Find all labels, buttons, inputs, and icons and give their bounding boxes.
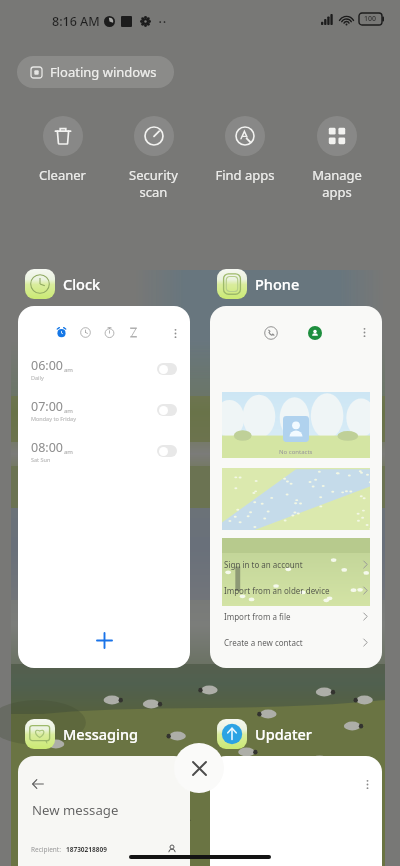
staticText: am — [64, 366, 73, 374]
staticText: Recipient: — [31, 845, 61, 854]
staticText: Import from a file — [224, 611, 291, 622]
button[interactable]: Create a new contact — [210, 629, 382, 655]
staticText: Daily — [31, 374, 44, 381]
button[interactable]: Toggle alarm — [157, 445, 177, 457]
staticText: No contacts — [279, 448, 313, 456]
staticText: 100 — [364, 14, 377, 24]
staticText: 8:16 AM — [52, 13, 100, 30]
staticText: 07:00 — [31, 398, 63, 415]
staticText: Security scan — [129, 166, 178, 201]
button[interactable]: No contacts — [210, 306, 382, 668]
staticText: Create a new contact — [224, 637, 303, 648]
button[interactable]: Import from an older device — [210, 577, 382, 603]
button[interactable]: Sign in to an account — [210, 551, 382, 577]
staticText: Messaging — [63, 724, 139, 744]
staticText: 18730218809 — [66, 845, 107, 854]
staticText: 06:00 — [31, 357, 63, 374]
staticText: am — [64, 407, 73, 415]
button[interactable]: Import from a file — [210, 603, 382, 629]
button[interactable] — [210, 756, 382, 866]
button[interactable]: Find apps — [199, 116, 291, 184]
button[interactable]: 06:00 — [18, 348, 190, 389]
button[interactable]: 07:00 — [18, 389, 190, 430]
button[interactable]: Close all apps — [174, 743, 224, 793]
staticText: New message — [32, 801, 119, 819]
button[interactable]: Floating windows — [17, 56, 174, 88]
button[interactable]: Security scan — [108, 116, 199, 201]
staticText: 08:00 — [31, 439, 63, 456]
staticText: Sat Sun — [31, 456, 51, 463]
staticText: Updater — [255, 724, 312, 744]
staticText: Import from an older device — [224, 585, 330, 596]
staticText: Clock — [63, 274, 101, 294]
staticText: Find apps — [215, 166, 275, 184]
button[interactable]: Manage apps — [291, 116, 383, 201]
staticText: Monday to Friday — [31, 415, 76, 422]
button[interactable]: Toggle alarm — [157, 363, 177, 375]
button[interactable]: Cleaner — [17, 116, 108, 184]
button[interactable]: Toggle alarm — [157, 404, 177, 416]
staticText: Phone — [255, 274, 300, 294]
staticText: Sign in to an account — [224, 559, 303, 570]
staticText: Floating windows — [50, 63, 157, 81]
button[interactable]: New message — [18, 756, 190, 866]
staticText: Manage apps — [312, 166, 362, 201]
staticText: am — [64, 448, 73, 456]
button[interactable]: 08:00 — [18, 430, 190, 471]
button[interactable]: 06:00 — [18, 306, 190, 668]
staticText: Cleaner — [39, 166, 86, 184]
